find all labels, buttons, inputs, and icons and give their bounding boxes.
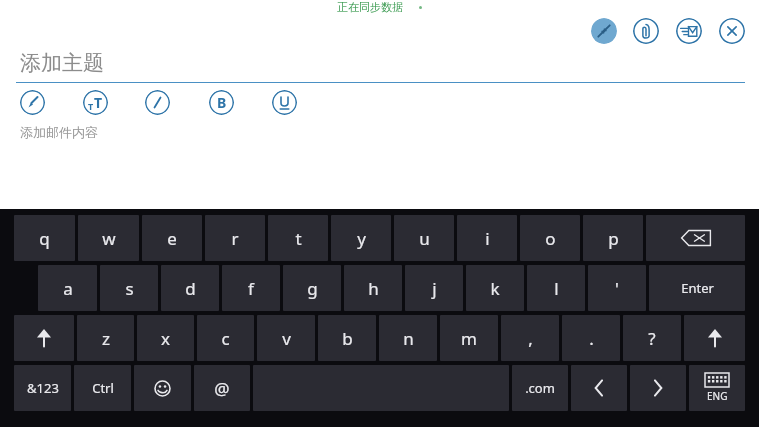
staticText: n: [403, 327, 414, 350]
staticText: s: [125, 277, 134, 300]
button[interactable]: Enter: [649, 265, 745, 311]
staticText: y: [357, 227, 366, 250]
button[interactable]: r: [205, 215, 265, 261]
button[interactable]: m: [440, 315, 498, 361]
button[interactable]: Ctrl: [74, 365, 131, 411]
staticText: ?: [648, 327, 656, 350]
staticText: r: [231, 227, 239, 250]
button[interactable]: Italic: [145, 90, 170, 115]
staticText: ENG: [707, 389, 728, 403]
button[interactable]: ': [588, 265, 646, 311]
staticText: .com: [525, 379, 555, 397]
staticText: l: [554, 277, 559, 300]
button[interactable]: q: [14, 215, 75, 261]
staticText: T: [88, 100, 94, 112]
button[interactable]: Shift: [14, 315, 74, 361]
button[interactable]: g: [283, 265, 341, 311]
staticText: B: [217, 93, 227, 112]
button[interactable]: Ink: [20, 90, 45, 115]
button[interactable]: t: [268, 215, 328, 261]
button[interactable]: f: [222, 265, 280, 311]
button[interactable]: Minimize: [591, 18, 617, 44]
staticText: f: [248, 277, 254, 300]
button[interactable]: Shift: [684, 315, 745, 361]
staticText: e: [167, 227, 177, 250]
button[interactable]: y: [331, 215, 391, 261]
button[interactable]: j: [405, 265, 463, 311]
button[interactable]: .: [562, 315, 620, 361]
button[interactable]: ?: [623, 315, 681, 361]
staticText: T: [94, 93, 103, 112]
button[interactable]: h: [344, 265, 402, 311]
button[interactable]: c: [197, 315, 254, 361]
button[interactable]: e: [142, 215, 202, 261]
button[interactable]: ,: [501, 315, 559, 361]
button[interactable]: a: [38, 265, 97, 311]
staticText: Enter: [681, 279, 714, 297]
button[interactable]: @: [194, 365, 250, 411]
button[interactable]: Next: [630, 365, 686, 411]
staticText: @: [214, 377, 230, 400]
button[interactable]: o: [520, 215, 580, 261]
button[interactable]: Previous: [571, 365, 627, 411]
button[interactable]: &123: [14, 365, 71, 411]
staticText: &123: [27, 379, 59, 397]
button[interactable]: v: [257, 315, 315, 361]
staticText: m: [461, 327, 477, 350]
staticText: 添加主题: [20, 50, 104, 76]
button[interactable]: Emoji: [134, 365, 191, 411]
button[interactable]: u: [394, 215, 454, 261]
staticText: u: [419, 227, 430, 250]
button[interactable]: s: [100, 265, 158, 311]
staticText: x: [161, 327, 170, 350]
staticText: d: [185, 277, 196, 300]
staticText: i: [485, 227, 490, 250]
staticText: z: [102, 327, 110, 350]
button[interactable]: Bold: [209, 90, 234, 115]
staticText: t: [295, 227, 302, 250]
button[interactable]: Underline: [272, 90, 297, 115]
button[interactable]: Font size: [83, 90, 108, 115]
staticText: g: [307, 277, 318, 300]
button[interactable]: i: [457, 215, 517, 261]
button[interactable]: k: [466, 265, 524, 311]
button[interactable]: p: [583, 215, 643, 261]
staticText: j: [432, 277, 437, 300]
staticText: 添加邮件内容: [20, 124, 98, 140]
button[interactable]: Backspace: [646, 215, 745, 261]
button[interactable]: x: [137, 315, 194, 361]
button[interactable]: z: [77, 315, 134, 361]
button[interactable]: l: [527, 265, 585, 311]
staticText: .: [589, 327, 594, 350]
staticText: a: [63, 277, 73, 300]
staticText: v: [282, 327, 291, 350]
staticText: Ctrl: [92, 379, 114, 397]
button[interactable]: Close: [719, 18, 745, 44]
button[interactable]: Send: [676, 18, 702, 44]
button[interactable]: b: [318, 315, 376, 361]
button[interactable]: Keyboard language ENG: [689, 365, 745, 411]
staticText: ': [615, 277, 619, 300]
button[interactable]: n: [379, 315, 437, 361]
staticText: p: [608, 227, 619, 250]
button[interactable]: d: [161, 265, 219, 311]
staticText: h: [368, 277, 379, 300]
staticText: ,: [528, 327, 533, 350]
staticText: o: [545, 227, 556, 250]
button[interactable]: Attach: [633, 18, 659, 44]
staticText: w: [102, 227, 116, 250]
staticText: 正在同步数据: [337, 0, 403, 14]
staticText: k: [490, 277, 500, 300]
staticText: c: [221, 327, 230, 350]
staticText: b: [342, 327, 353, 350]
button[interactable]: .com: [512, 365, 568, 411]
button[interactable]: w: [78, 215, 139, 261]
staticText: q: [39, 227, 50, 250]
